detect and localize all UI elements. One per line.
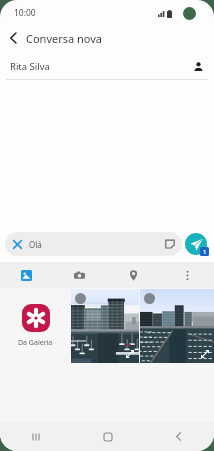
button[interactable]: Olá bbox=[5, 232, 182, 256]
button[interactable]: Stickers bbox=[163, 237, 177, 251]
button[interactable]: Location bbox=[106, 262, 160, 288]
button[interactable]: Contacts bbox=[191, 59, 205, 73]
button[interactable]: Back bbox=[143, 422, 214, 451]
staticText: Olá bbox=[29, 239, 42, 250]
button[interactable]: Send bbox=[185, 233, 207, 255]
button[interactable]: Photo bbox=[140, 289, 214, 363]
button[interactable]: Recents bbox=[0, 422, 72, 451]
button[interactable]: Back bbox=[0, 26, 26, 50]
button[interactable]: Camera bbox=[53, 262, 106, 288]
staticText: 10:00 bbox=[14, 7, 36, 19]
staticText: 1 bbox=[203, 248, 207, 256]
staticText: Conversa nova bbox=[26, 31, 103, 46]
button[interactable]: More options bbox=[160, 262, 214, 288]
staticText: Rita Silva bbox=[10, 60, 50, 73]
staticText: Da Galeria bbox=[18, 338, 53, 348]
button[interactable]: Da Galeria bbox=[0, 288, 71, 364]
button[interactable]: Photo bbox=[71, 289, 139, 363]
button[interactable]: Gallery bbox=[0, 262, 53, 288]
button[interactable]: Home bbox=[72, 422, 143, 451]
